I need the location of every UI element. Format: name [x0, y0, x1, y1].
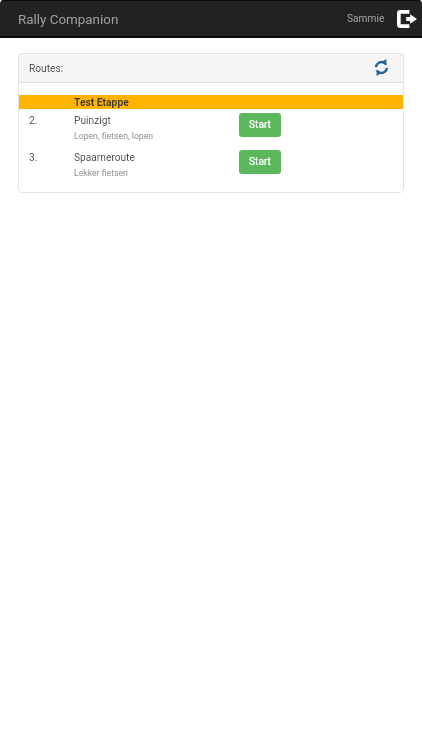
staticText: Lekker fietsen	[74, 168, 128, 178]
button[interactable]: 2.	[18, 109, 404, 146]
staticText: Puinzigt	[74, 115, 111, 127]
staticText: Sammie	[347, 13, 385, 25]
staticText: 2.	[29, 115, 38, 127]
staticText: 3.	[29, 152, 38, 164]
button[interactable]: Start	[239, 113, 281, 137]
button[interactable]: Start	[239, 150, 281, 174]
button[interactable]: Refresh	[374, 60, 389, 75]
staticText: Lopen, fietsen, lopen	[74, 131, 154, 141]
staticText: Rally Companion	[18, 12, 119, 28]
button[interactable]: Rally Companion	[0, 2, 134, 35]
staticText: Start	[249, 119, 271, 131]
button[interactable]: Sign out	[389, 2, 422, 36]
staticText: Routes:	[29, 63, 64, 75]
staticText: Start	[249, 156, 271, 168]
button[interactable]: 3.	[18, 146, 404, 183]
staticText: Test Etappe	[74, 96, 129, 108]
staticText: Spaarneroute	[74, 152, 135, 164]
button[interactable]: Sammie	[343, 5, 389, 33]
